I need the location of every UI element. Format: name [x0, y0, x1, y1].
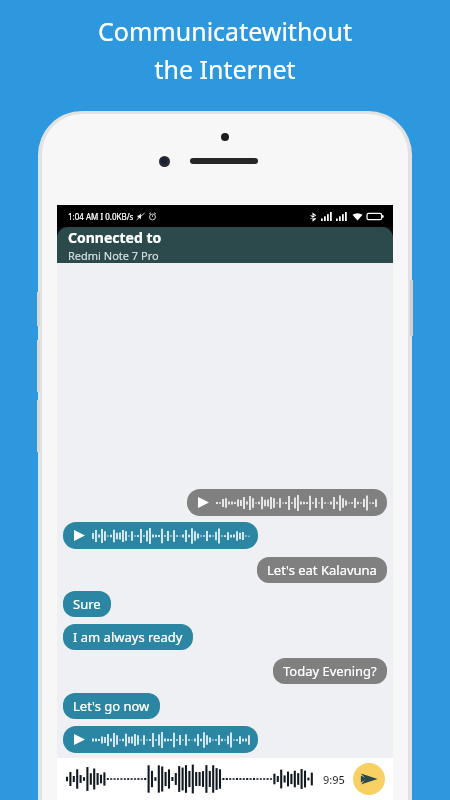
button[interactable]: Play voice message [63, 726, 258, 753]
button[interactable]: Send [353, 763, 385, 795]
staticText: I am always ready [73, 628, 183, 646]
staticText: Connected to [68, 228, 162, 247]
staticText: 9:95 [323, 772, 345, 787]
staticText: Today Evening? [283, 662, 377, 680]
button[interactable]: Sure [63, 591, 111, 617]
button[interactable]: Let's go now [63, 693, 160, 719]
staticText: the Internet [154, 52, 296, 86]
button[interactable]: Let's eat Kalavuna [257, 557, 387, 583]
staticText: Let's go now [73, 697, 150, 715]
staticText: Communicatewithout [98, 14, 352, 48]
button[interactable]: Play voice message [187, 489, 387, 516]
staticText: Sure [73, 595, 101, 613]
button[interactable]: I am always ready [63, 624, 193, 650]
staticText: 1:04 AM I 0.0KB/s [68, 211, 134, 222]
staticText: Let's eat Kalavuna [267, 561, 377, 579]
button[interactable]: Play voice message [63, 522, 258, 549]
staticText: Redmi Note 7 Pro [68, 248, 159, 263]
button[interactable]: Today Evening? [273, 658, 387, 684]
button[interactable]: Connected to [57, 227, 393, 263]
